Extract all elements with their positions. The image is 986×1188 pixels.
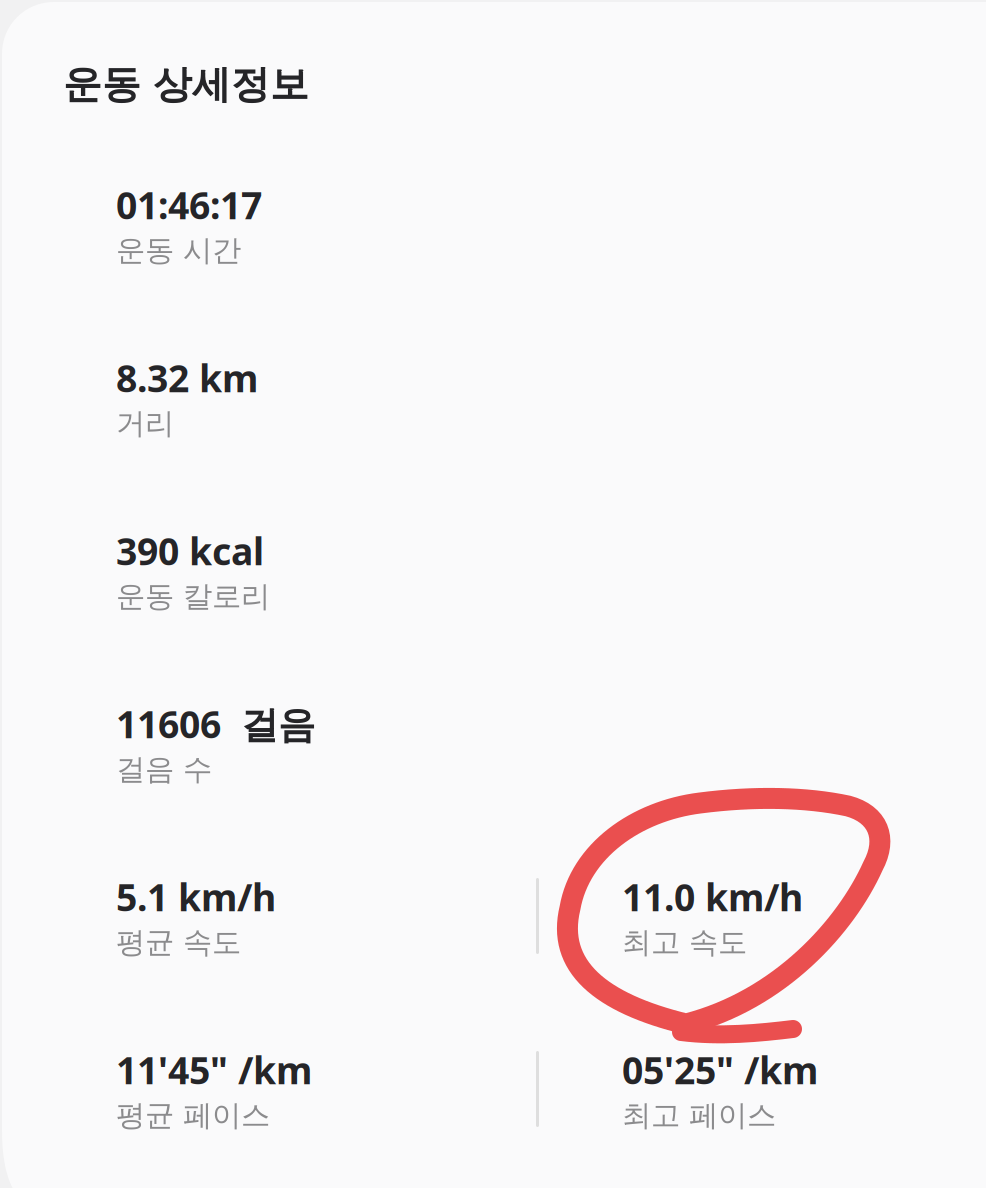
staticText: 운동 상세정보 (63, 61, 309, 108)
staticText: 05'25" /km (622, 1045, 818, 1095)
button[interactable]: 11'45" /km (116, 1045, 516, 1123)
button[interactable]: 5.1 km/h (116, 872, 516, 950)
staticText: 5.1 km/h (116, 872, 276, 922)
button[interactable]: 11606 걸음 (116, 699, 516, 777)
staticText: 8.32 km (116, 353, 258, 403)
staticText: 걸음 수 (116, 752, 212, 788)
staticText: 11'45" /km (116, 1045, 312, 1095)
staticText: 운동 칼로리 (116, 579, 270, 615)
staticText: 평균 페이스 (116, 1098, 270, 1134)
staticText: 01:46:17 (116, 180, 262, 230)
staticText: 11606 걸음 (116, 699, 315, 749)
staticText: 11.0 km/h (622, 872, 803, 922)
staticText: 거리 (116, 406, 174, 442)
staticText: 390 kcal (116, 526, 264, 576)
staticText: 최고 페이스 (622, 1098, 776, 1134)
staticText: 평균 속도 (116, 925, 241, 961)
button[interactable]: 390 kcal (116, 526, 516, 604)
staticText: 최고 속도 (622, 925, 747, 961)
button[interactable]: 05'25" /km (622, 1045, 982, 1123)
button[interactable]: 8.32 km (116, 353, 516, 431)
button[interactable]: 01:46:17 (116, 180, 516, 258)
staticText: 운동 시간 (116, 233, 241, 269)
button[interactable]: 11.0 km/h (622, 872, 982, 950)
